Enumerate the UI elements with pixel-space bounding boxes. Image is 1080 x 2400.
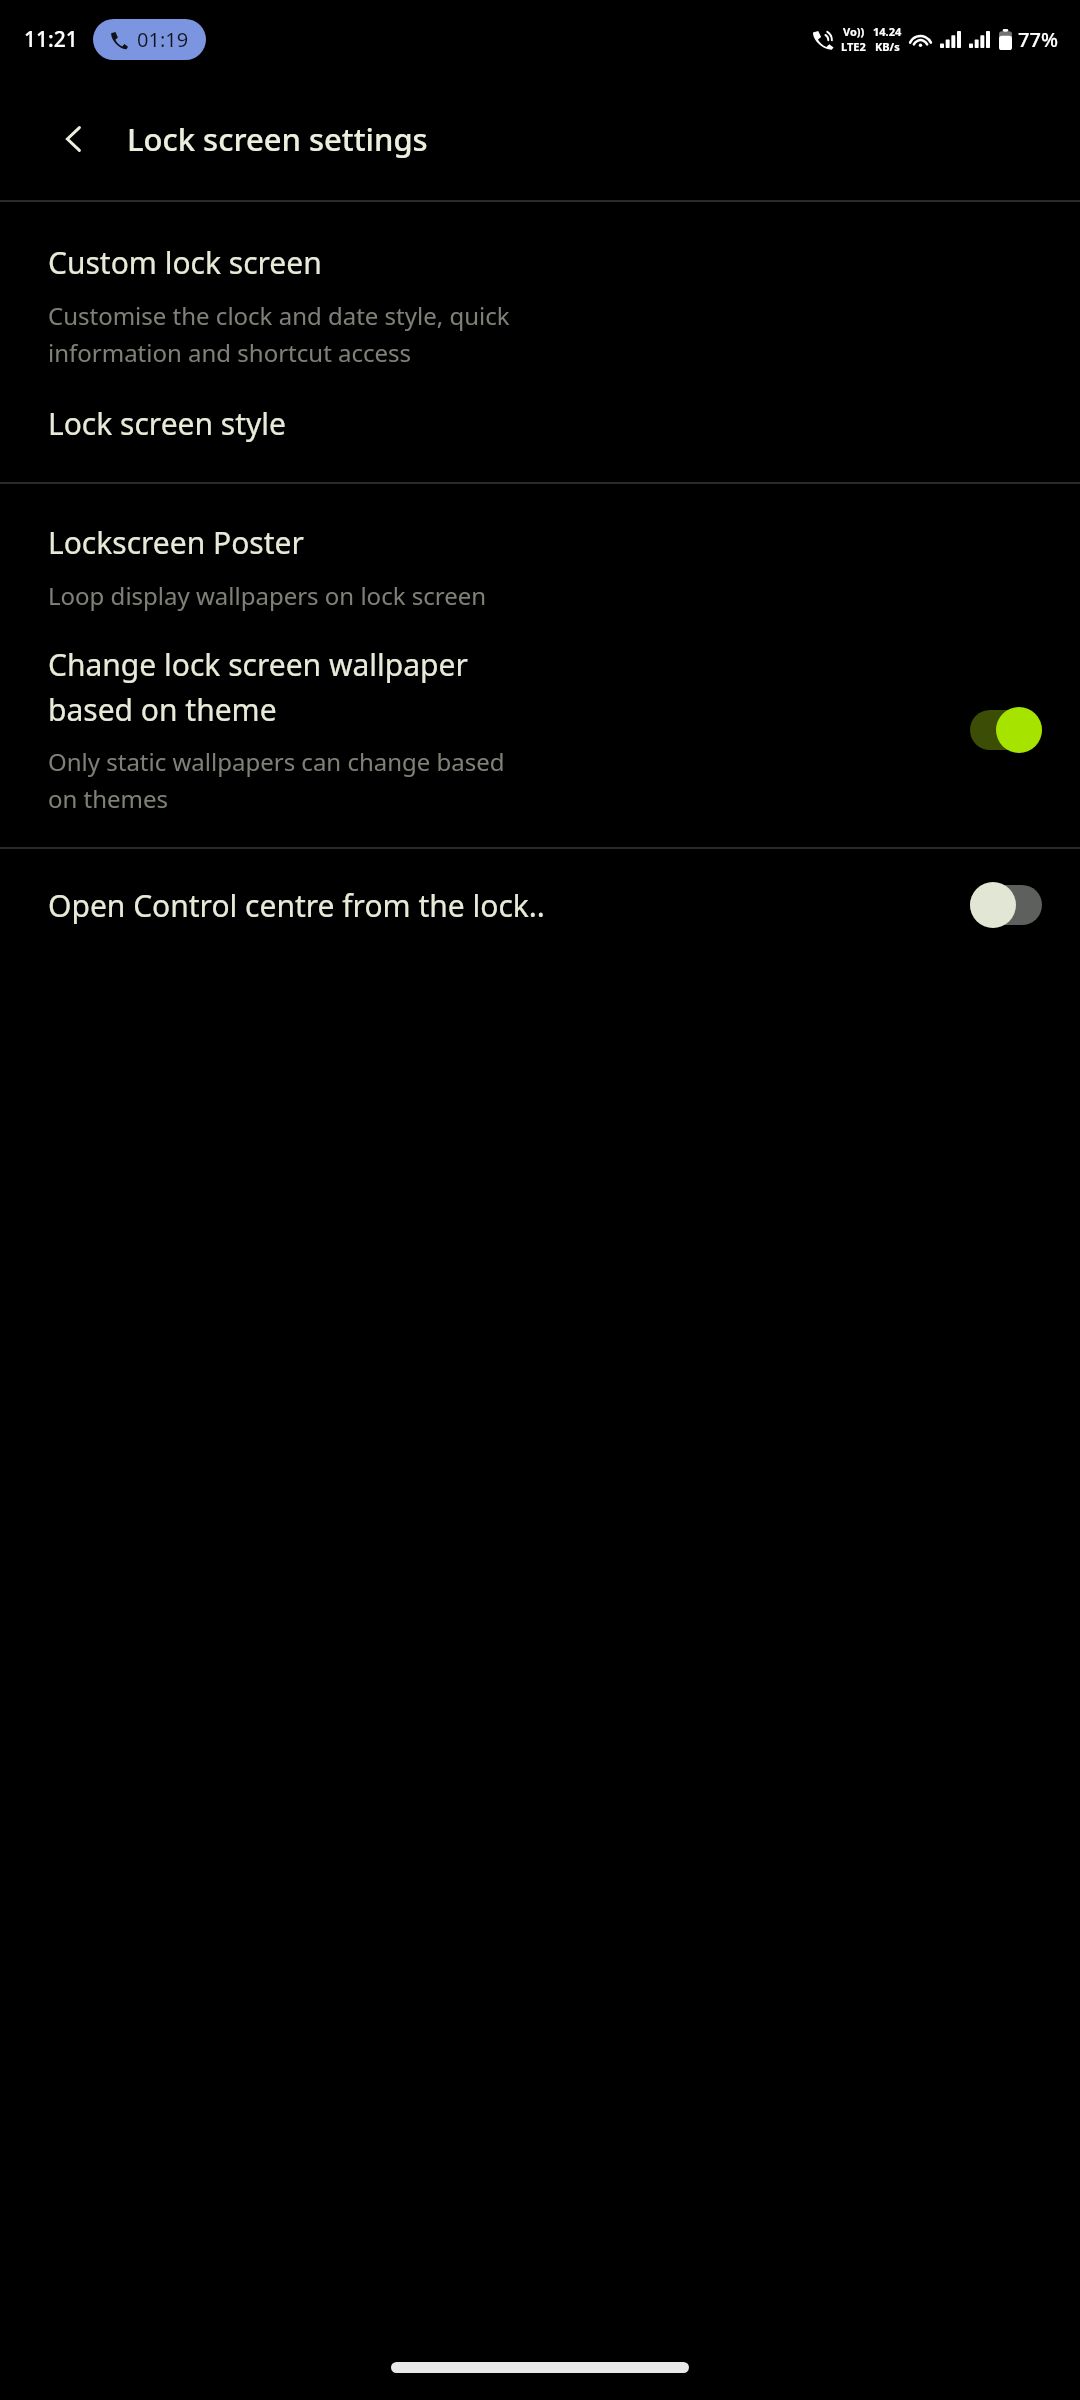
- staticText: 14.24: [873, 24, 902, 39]
- staticText: Lock screen settings: [127, 118, 428, 160]
- button[interactable]: Toggle off: [964, 877, 1048, 933]
- staticText: Lockscreen Poster: [48, 522, 304, 563]
- button[interactable]: Change lock screen wallpaper based on th…: [0, 644, 1080, 815]
- button[interactable]: Lockscreen Poster: [0, 522, 1080, 612]
- button[interactable]: Lock screen style: [0, 403, 1080, 444]
- staticText: 77%: [1018, 26, 1058, 53]
- button[interactable]: Custom lock screen: [0, 242, 1080, 369]
- staticText: Only static wallpapers can change based …: [48, 745, 505, 815]
- staticText: Lock screen style: [48, 403, 286, 444]
- staticText: 01:19: [137, 26, 189, 53]
- staticText: Loop display wallpapers on lock screen: [48, 579, 487, 612]
- button[interactable]: Back: [48, 113, 100, 165]
- staticText: 11:21: [24, 25, 78, 54]
- staticText: Open Control centre from the lock..: [48, 885, 545, 926]
- staticText: LTE2: [841, 39, 866, 54]
- button[interactable]: Open Control centre from the lock..: [0, 877, 1080, 933]
- staticText: Customise the clock and date style, quic…: [48, 299, 510, 369]
- staticText: Change lock screen wallpaper based on th…: [48, 644, 468, 729]
- button[interactable]: 01:19: [93, 19, 206, 60]
- button[interactable]: Toggle on: [964, 702, 1048, 758]
- staticText: Vo)): [843, 24, 865, 39]
- staticText: KB/s: [875, 39, 900, 54]
- staticText: Custom lock screen: [48, 242, 322, 283]
